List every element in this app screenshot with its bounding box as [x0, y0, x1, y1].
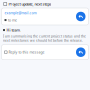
staticText: example@mail.com [4, 11, 36, 15]
staticText: Hi team, [6, 27, 21, 33]
staticText: Project update, next steps [8, 1, 51, 7]
button[interactable]: Project update, next steps [0, 0, 90, 8]
staticText: to me [8, 18, 17, 22]
staticText: I am summarising the current project sta… [3, 34, 86, 43]
button[interactable]: Reply [76, 12, 85, 21]
staticText: Reply to this message [8, 50, 44, 54]
button[interactable]: Reply to this message [0, 45, 90, 60]
